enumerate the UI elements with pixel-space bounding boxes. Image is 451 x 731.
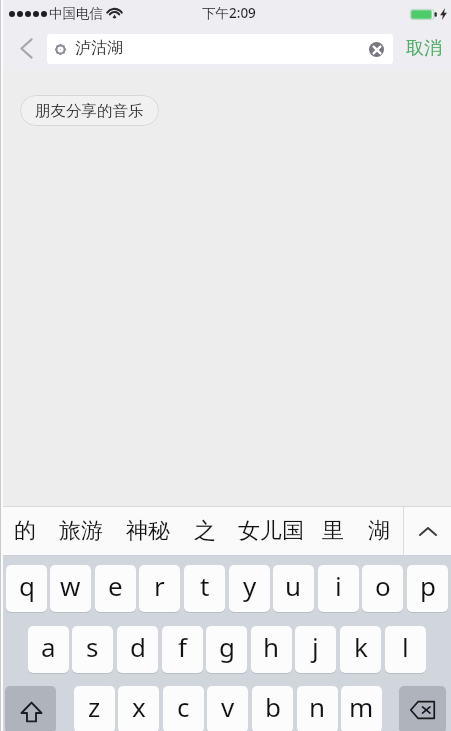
staticText: a <box>41 629 56 664</box>
staticText: m <box>349 689 374 724</box>
staticText: 朋友分享的音乐 <box>35 101 144 121</box>
button[interactable]: Back <box>0 30 47 68</box>
button[interactable]: k <box>340 626 381 673</box>
button[interactable]: 湖 <box>357 506 400 556</box>
button[interactable]: c <box>163 686 204 731</box>
staticText: 取消 <box>406 37 442 60</box>
staticText: 之 <box>194 517 216 545</box>
staticText: q <box>19 568 35 603</box>
button[interactable]: 泸沽湖 <box>47 34 393 64</box>
button[interactable]: x <box>118 686 159 731</box>
button[interactable]: f <box>162 626 203 673</box>
button[interactable]: Backspace <box>399 686 446 731</box>
staticText: k <box>354 629 368 664</box>
staticText: v <box>221 689 235 724</box>
button[interactable]: 的 <box>3 506 46 556</box>
staticText: w <box>60 568 81 603</box>
staticText: y <box>243 568 257 603</box>
button[interactable]: i <box>318 565 359 612</box>
button[interactable]: z <box>74 686 115 731</box>
button[interactable]: o <box>362 565 403 612</box>
button[interactable]: h <box>251 626 292 673</box>
button[interactable]: 女儿国 <box>228 506 314 556</box>
button[interactable]: v <box>207 686 248 731</box>
button[interactable]: l <box>385 626 426 673</box>
button[interactable]: a <box>28 626 69 673</box>
staticText: 泸沽湖 <box>75 38 123 58</box>
staticText: b <box>265 689 281 724</box>
button[interactable]: b <box>252 686 293 731</box>
staticText: 女儿国 <box>238 517 304 545</box>
staticText: 下午2:09 <box>202 4 256 22</box>
staticText: r <box>154 568 165 603</box>
button[interactable]: t <box>184 565 225 612</box>
button[interactable]: 取消 <box>397 30 451 68</box>
staticText: x <box>132 689 146 724</box>
staticText: f <box>178 629 187 664</box>
button[interactable]: 旅游 <box>48 506 113 556</box>
staticText: g <box>219 629 235 664</box>
staticText: j <box>312 629 319 664</box>
staticText: l <box>402 629 409 664</box>
staticText: n <box>309 689 326 724</box>
staticText: d <box>130 629 146 664</box>
staticText: c <box>177 689 190 724</box>
button[interactable]: p <box>407 565 448 612</box>
staticText: 里 <box>322 517 344 545</box>
button[interactable]: g <box>206 626 247 673</box>
button[interactable]: 之 <box>183 506 226 556</box>
staticText: o <box>375 568 391 603</box>
staticText: 中国电信 <box>49 5 103 22</box>
staticText: 湖 <box>368 517 390 545</box>
button[interactable]: 里 <box>311 506 354 556</box>
button[interactable]: Clear text <box>369 42 384 57</box>
staticText: t <box>200 568 210 603</box>
staticText: z <box>88 689 101 724</box>
staticText: 旅游 <box>59 517 103 545</box>
button[interactable]: r <box>139 565 180 612</box>
staticText: i <box>335 568 342 603</box>
button[interactable]: w <box>50 565 91 612</box>
button[interactable]: 神秘 <box>115 506 180 556</box>
button[interactable]: n <box>297 686 338 731</box>
button[interactable]: q <box>6 565 47 612</box>
button[interactable]: y <box>229 565 270 612</box>
staticText: e <box>108 568 123 603</box>
staticText: 的 <box>14 517 36 545</box>
button[interactable]: Collapse candidates <box>404 506 451 556</box>
button[interactable]: 朋友分享的音乐 <box>20 95 159 126</box>
button[interactable]: u <box>273 565 314 612</box>
button[interactable]: j <box>295 626 336 673</box>
button[interactable]: s <box>72 626 113 673</box>
staticText: p <box>420 568 436 603</box>
staticText: u <box>285 568 302 603</box>
button[interactable]: e <box>95 565 136 612</box>
staticText: h <box>263 629 280 664</box>
button[interactable]: Shift <box>5 686 56 731</box>
staticText: s <box>86 629 99 664</box>
staticText: 神秘 <box>126 517 170 545</box>
button[interactable]: d <box>117 626 158 673</box>
button[interactable]: m <box>341 686 382 731</box>
